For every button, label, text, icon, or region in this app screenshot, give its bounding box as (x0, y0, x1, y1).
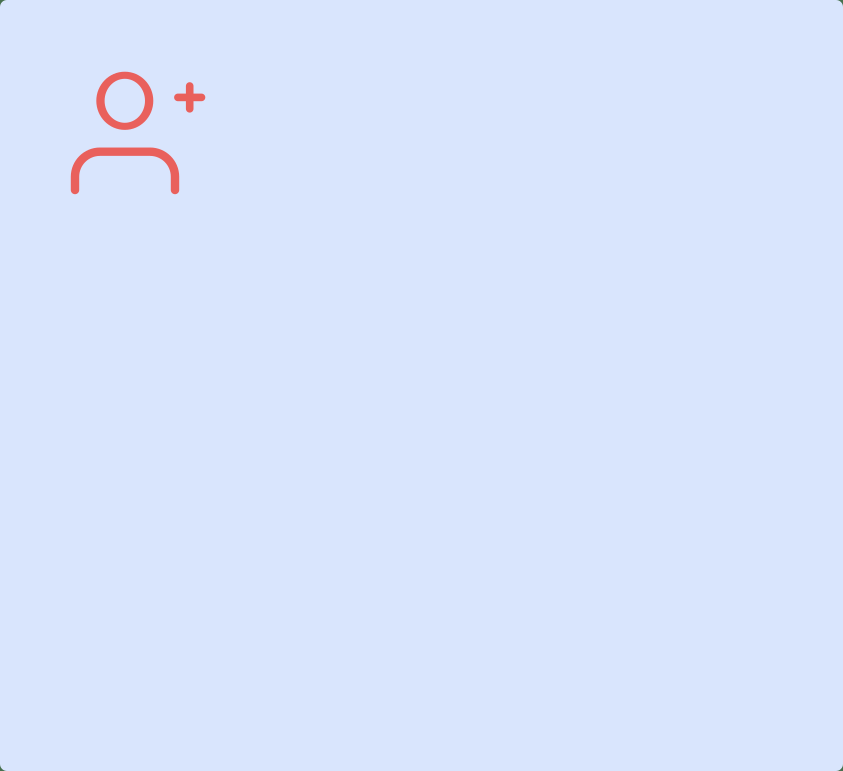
button[interactable]: Add Person (71, 72, 205, 194)
